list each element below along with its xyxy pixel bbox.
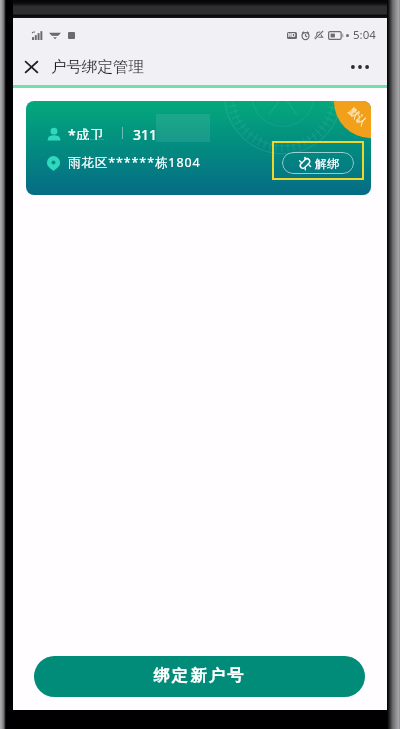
staticText: 默认 (346, 105, 370, 128)
button[interactable]: 默认 (26, 101, 371, 195)
staticText: *成卫 (68, 125, 104, 140)
staticText: HD (288, 32, 296, 39)
staticText: 绑定新户号 (153, 666, 246, 686)
staticText: 311 (133, 125, 158, 140)
staticText: 5:04 (353, 27, 376, 43)
button[interactable]: 绑定新户号 (34, 656, 365, 697)
button[interactable]: Close (13, 49, 49, 85)
staticText: 雨花区******栋1804 (68, 154, 201, 169)
staticText: 户号绑定管理 (51, 57, 144, 77)
staticText: 解绑 (315, 156, 339, 171)
button[interactable]: 解绑 (282, 152, 354, 174)
button[interactable]: More options (342, 49, 378, 85)
